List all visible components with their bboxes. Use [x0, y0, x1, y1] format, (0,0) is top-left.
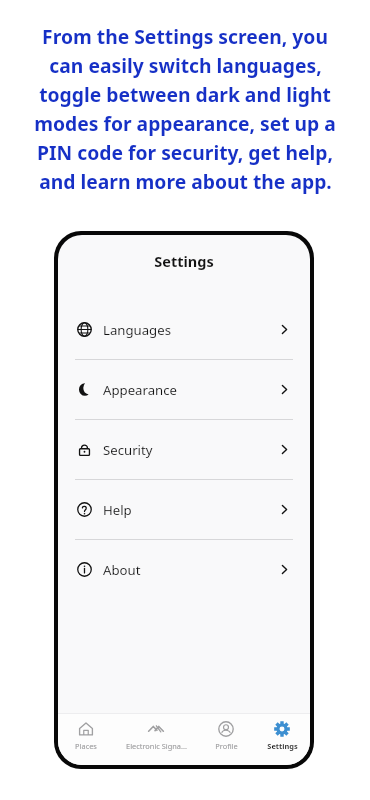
other: Profile [218, 721, 234, 737]
button[interactable]: Help [58, 480, 310, 539]
staticText: can easily switch languages, [49, 52, 322, 78]
staticText: Profile [215, 741, 238, 751]
other: Places [78, 721, 94, 737]
button[interactable]: Electronic Signa... [114, 714, 198, 751]
button[interactable]: Profile [198, 714, 254, 751]
staticText: Security [103, 441, 153, 459]
staticText: modes for appearance, set up a [34, 110, 336, 136]
staticText: About [103, 561, 141, 579]
button[interactable]: Appearance [58, 360, 310, 419]
button[interactable]: Languages [58, 300, 310, 359]
staticText: Help [103, 501, 132, 519]
staticText: PIN code for security, get help, [37, 139, 333, 165]
staticText: Settings [267, 741, 298, 751]
other: Electronic Signa... [148, 721, 164, 737]
staticText: Appearance [103, 381, 177, 399]
staticText: Electronic Signa... [126, 741, 187, 751]
staticText: and learn more about the app. [39, 168, 332, 194]
staticText: From the Settings screen, you [42, 23, 328, 49]
staticText: Places [75, 741, 97, 751]
other: Settings [274, 721, 290, 737]
button[interactable]: Settings [254, 714, 310, 751]
button[interactable]: Security [58, 420, 310, 479]
staticText: toggle between dark and light [39, 81, 331, 107]
button[interactable]: About [58, 540, 310, 599]
staticText: Languages [103, 321, 171, 339]
button[interactable]: Places [58, 714, 114, 751]
staticText: Settings [154, 251, 214, 271]
